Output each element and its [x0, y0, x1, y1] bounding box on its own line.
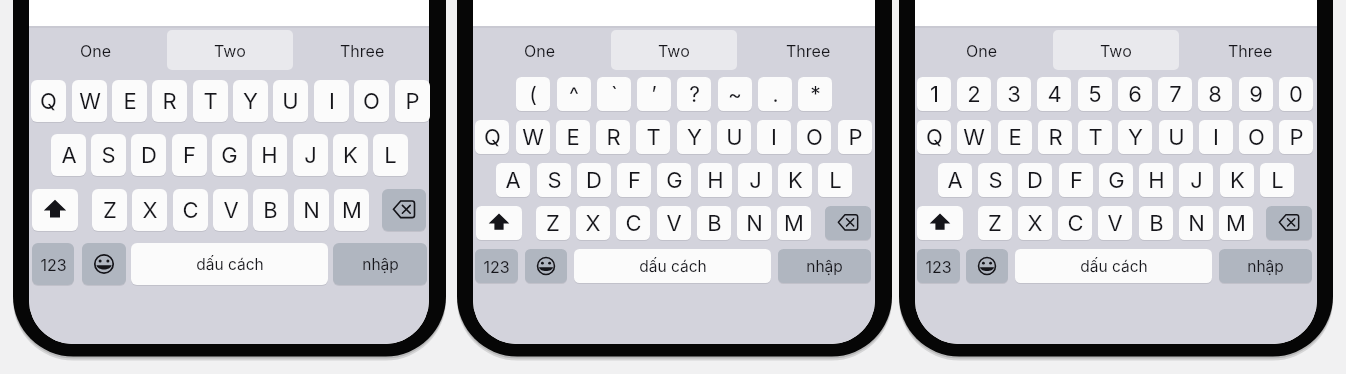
button[interactable]: 9 — [1239, 77, 1273, 111]
button[interactable]: E — [998, 120, 1032, 154]
button[interactable]: Y — [1118, 120, 1152, 154]
button[interactable]: K — [1220, 163, 1254, 197]
button[interactable]: Shift — [917, 206, 963, 240]
button[interactable]: K — [333, 134, 368, 176]
button[interactable]: One — [29, 30, 162, 70]
button[interactable]: B — [253, 189, 288, 231]
button[interactable]: dấu cách — [131, 243, 328, 285]
button[interactable]: I — [1199, 120, 1233, 154]
button[interactable]: Y — [677, 120, 711, 154]
button[interactable]: L — [818, 163, 852, 197]
button[interactable]: R — [596, 120, 630, 154]
button[interactable]: H — [252, 134, 287, 176]
button[interactable]: 123 — [32, 243, 74, 285]
button[interactable]: Two — [611, 30, 737, 70]
button[interactable]: D — [1018, 163, 1052, 197]
button[interactable]: 123 — [917, 249, 960, 283]
button[interactable]: Q — [31, 80, 66, 122]
button[interactable]: O — [797, 120, 831, 154]
button[interactable]: 1 — [917, 77, 951, 111]
button[interactable]: A — [496, 163, 530, 197]
button[interactable]: G — [212, 134, 247, 176]
button[interactable]: A — [51, 134, 86, 176]
button[interactable]: J — [293, 134, 328, 176]
button[interactable]: D — [577, 163, 611, 197]
button[interactable]: 0 — [1279, 77, 1313, 111]
button[interactable]: ^ — [557, 77, 591, 111]
button[interactable]: L — [1260, 163, 1294, 197]
button[interactable]: S — [537, 163, 571, 197]
button[interactable]: nhập — [778, 249, 871, 283]
button[interactable]: 7 — [1158, 77, 1192, 111]
button[interactable]: C — [616, 206, 650, 240]
button[interactable]: M — [334, 189, 369, 231]
button[interactable]: W — [957, 120, 991, 154]
button[interactable]: D — [131, 134, 166, 176]
button[interactable]: dấu cách — [574, 249, 771, 283]
button[interactable]: Two — [1053, 30, 1179, 70]
button[interactable]: P — [1279, 120, 1313, 154]
button[interactable]: nhập — [1219, 249, 1312, 283]
button[interactable]: N — [737, 206, 771, 240]
button[interactable]: ’ — [637, 77, 671, 111]
button[interactable]: U — [1159, 120, 1193, 154]
button[interactable]: V — [213, 189, 248, 231]
button[interactable]: Backspace — [825, 206, 871, 240]
button[interactable]: H — [698, 163, 732, 197]
button[interactable]: ` — [597, 77, 631, 111]
button[interactable]: R — [1038, 120, 1072, 154]
button[interactable]: One — [473, 30, 607, 70]
button[interactable]: Q — [475, 120, 509, 154]
button[interactable]: C — [1058, 206, 1092, 240]
button[interactable]: T — [1078, 120, 1112, 154]
button[interactable]: B — [697, 206, 731, 240]
button[interactable]: U — [717, 120, 751, 154]
button[interactable]: 2 — [957, 77, 991, 111]
button[interactable]: nhập — [333, 243, 427, 285]
button[interactable]: M — [777, 206, 811, 240]
button[interactable]: T — [193, 80, 228, 122]
button[interactable]: X — [132, 189, 167, 231]
button[interactable]: One — [915, 30, 1049, 70]
button[interactable]: Y — [233, 80, 268, 122]
button[interactable]: 4 — [1037, 77, 1071, 111]
button[interactable]: N — [294, 189, 329, 231]
button[interactable]: I — [757, 120, 791, 154]
button[interactable]: Three — [1183, 30, 1317, 70]
button[interactable]: O — [1239, 120, 1273, 154]
button[interactable]: Shift — [32, 189, 78, 231]
button[interactable]: Shift — [476, 206, 522, 240]
button[interactable]: dấu cách — [1015, 249, 1212, 283]
button[interactable]: J — [1179, 163, 1213, 197]
button[interactable]: N — [1179, 206, 1213, 240]
button[interactable]: Emoji — [82, 243, 126, 285]
button[interactable]: H — [1139, 163, 1173, 197]
button[interactable]: F — [172, 134, 207, 176]
button[interactable]: * — [798, 77, 832, 111]
button[interactable]: Backspace — [1266, 206, 1312, 240]
button[interactable]: J — [738, 163, 772, 197]
button[interactable]: S — [91, 134, 126, 176]
button[interactable]: Two — [167, 30, 293, 70]
button[interactable]: Z — [978, 206, 1012, 240]
button[interactable]: ~ — [718, 77, 752, 111]
button[interactable]: 123 — [475, 249, 518, 283]
button[interactable]: V — [1098, 206, 1132, 240]
button[interactable]: W — [516, 120, 550, 154]
button[interactable]: L — [373, 134, 408, 176]
button[interactable]: F — [1059, 163, 1093, 197]
button[interactable]: P — [395, 80, 430, 122]
button[interactable]: X — [576, 206, 610, 240]
button[interactable]: E — [556, 120, 590, 154]
button[interactable]: 3 — [997, 77, 1031, 111]
button[interactable]: V — [657, 206, 691, 240]
button[interactable]: B — [1139, 206, 1173, 240]
button[interactable]: . — [758, 77, 792, 111]
button[interactable]: ( — [516, 77, 550, 111]
button[interactable]: F — [617, 163, 651, 197]
button[interactable]: A — [938, 163, 972, 197]
button[interactable]: G — [1099, 163, 1133, 197]
button[interactable]: P — [838, 120, 872, 154]
button[interactable]: Z — [92, 189, 127, 231]
button[interactable]: R — [152, 80, 187, 122]
